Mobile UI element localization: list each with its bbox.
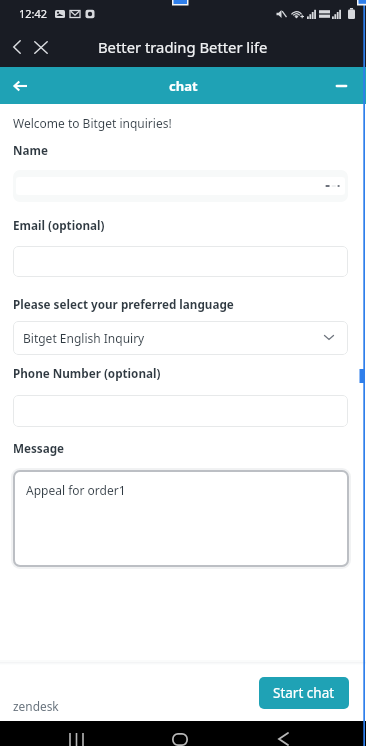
staticText: Start chat xyxy=(273,684,335,702)
button[interactable]: Recents xyxy=(52,721,100,746)
staticText: Bitget English Inquiry xyxy=(23,330,145,346)
button[interactable] xyxy=(13,246,348,277)
button[interactable]: Bitget English Inquiry xyxy=(13,321,348,355)
staticText: Email (optional) xyxy=(13,217,105,233)
staticText: zendesk xyxy=(13,698,59,714)
button[interactable]: Back xyxy=(7,73,33,99)
staticText: Welcome to Bitget inquiries! xyxy=(13,115,172,131)
button[interactable]: Back xyxy=(262,721,310,746)
staticText: 12:42 xyxy=(19,6,48,21)
staticText: Message xyxy=(13,440,65,456)
staticText: Appeal for order1 xyxy=(26,482,126,498)
staticText: Phone Number (optional) xyxy=(13,365,161,381)
staticText: Better trading Better life xyxy=(98,37,268,57)
button[interactable]: Back xyxy=(4,34,30,60)
button[interactable] xyxy=(13,395,348,427)
button[interactable]: Minimize xyxy=(328,73,354,99)
button[interactable]: Appeal for order1 xyxy=(15,472,347,565)
staticText: Name xyxy=(13,142,48,158)
staticText: Please select your preferred language xyxy=(13,296,234,312)
button[interactable]: Home xyxy=(156,721,204,746)
button[interactable]: Start chat xyxy=(259,677,349,709)
button[interactable] xyxy=(13,170,348,202)
staticText: chat xyxy=(169,77,198,95)
button[interactable]: Close xyxy=(28,34,54,60)
